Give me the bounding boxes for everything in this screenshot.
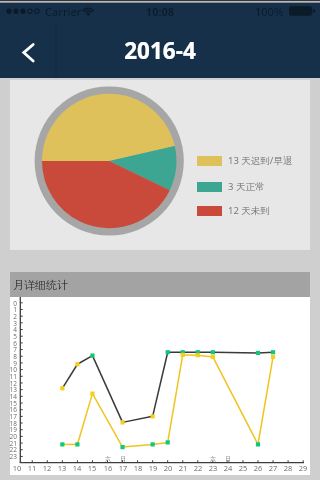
staticText: 11 bbox=[25, 463, 39, 473]
staticText: 2 bbox=[1, 312, 17, 321]
staticText: 14 bbox=[1, 392, 17, 401]
staticText: 18 bbox=[1, 419, 17, 428]
staticText: 12 bbox=[1, 379, 17, 388]
staticText: 20 bbox=[1, 432, 17, 441]
staticText: 12 bbox=[40, 463, 54, 473]
staticText: 22 bbox=[1, 445, 17, 454]
staticText: 3 bbox=[1, 319, 17, 328]
staticText: 16 bbox=[101, 463, 115, 473]
staticText: 21 bbox=[1, 439, 17, 448]
staticText: 六 bbox=[103, 455, 113, 463]
staticText: 3 天正常 bbox=[228, 180, 265, 193]
staticText: 2016-4 bbox=[0, 35, 320, 66]
staticText: 13 天迟到/早退 bbox=[228, 154, 293, 167]
staticText: 15 bbox=[85, 463, 99, 473]
staticText: 16 bbox=[1, 405, 17, 414]
staticText: 11 bbox=[1, 372, 17, 381]
staticText: 25 bbox=[236, 463, 250, 473]
staticText: 0 bbox=[1, 299, 17, 308]
staticText: 10:08 bbox=[0, 4, 320, 19]
staticText: 19 bbox=[1, 425, 17, 434]
staticText: 10 bbox=[1, 365, 17, 374]
staticText: 24 bbox=[221, 463, 235, 473]
button[interactable]: 3 天正常 bbox=[197, 180, 265, 193]
staticText: 6 bbox=[1, 339, 17, 348]
staticText: 27 bbox=[266, 463, 280, 473]
staticText: 15 bbox=[1, 399, 17, 408]
staticText: 17 bbox=[1, 412, 17, 421]
staticText: 9 bbox=[1, 359, 17, 368]
staticText: 17 bbox=[116, 463, 130, 473]
staticText: Carrier bbox=[45, 4, 82, 19]
staticText: 18 bbox=[131, 463, 145, 473]
staticText: 23 bbox=[1, 452, 17, 461]
staticText: 日 bbox=[223, 455, 233, 463]
button[interactable]: 12 天未到 bbox=[197, 204, 270, 217]
staticText: 月详细统计 bbox=[13, 278, 68, 292]
staticText: 26 bbox=[251, 463, 265, 473]
staticText: 20 bbox=[161, 463, 175, 473]
staticText: 29 bbox=[296, 463, 310, 473]
staticText: 8 bbox=[1, 352, 17, 361]
staticText: 13 bbox=[55, 463, 69, 473]
button[interactable]: Back bbox=[0, 24, 56, 78]
staticText: 19 bbox=[146, 463, 160, 473]
staticText: 5 bbox=[1, 332, 17, 341]
staticText: 10 bbox=[10, 463, 24, 473]
staticText: 14 bbox=[70, 463, 84, 473]
staticText: 13 bbox=[1, 385, 17, 394]
staticText: 六 bbox=[208, 455, 218, 463]
button[interactable]: 13 天迟到/早退 bbox=[197, 154, 293, 167]
staticText: 21 bbox=[176, 463, 190, 473]
staticText: 1 bbox=[1, 305, 17, 314]
staticText: 22 bbox=[191, 463, 205, 473]
staticText: 23 bbox=[206, 463, 220, 473]
staticText: 28 bbox=[281, 463, 295, 473]
staticText: 100% bbox=[255, 4, 284, 19]
staticText: 12 天未到 bbox=[228, 204, 270, 217]
staticText: 7 bbox=[1, 345, 17, 354]
staticText: 4 bbox=[1, 325, 17, 334]
staticText: 日 bbox=[118, 455, 128, 463]
